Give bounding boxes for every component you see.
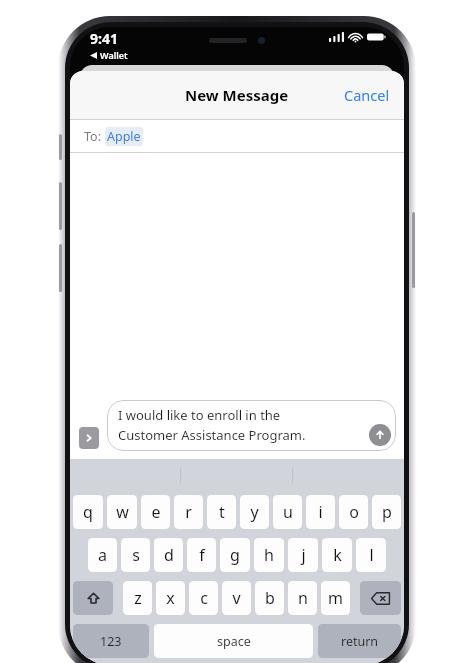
staticText: h — [264, 544, 274, 566]
button[interactable]: q — [73, 495, 103, 529]
staticText: k — [333, 544, 342, 566]
button[interactable]: Shift — [73, 581, 113, 615]
staticText: e — [151, 501, 161, 523]
button[interactable]: w — [107, 495, 137, 529]
button[interactable]: u — [273, 495, 302, 529]
staticText: v — [232, 587, 241, 609]
staticText: n — [298, 587, 308, 609]
staticText: y — [250, 501, 259, 523]
button[interactable]: 123 — [73, 624, 149, 658]
button[interactable]: m — [321, 581, 350, 615]
staticText: g — [230, 544, 240, 566]
button[interactable]: d — [154, 538, 183, 572]
staticText: x — [166, 587, 175, 609]
staticText: d — [164, 544, 174, 566]
button[interactable]: space — [154, 624, 313, 658]
staticText: To: — [84, 128, 101, 145]
staticText: t — [219, 501, 225, 523]
button[interactable]: I would like to enroll in the — [107, 400, 396, 451]
staticText: I would like to enroll in the — [118, 406, 281, 424]
button[interactable]: z — [123, 581, 152, 615]
button[interactable]: Send — [369, 424, 391, 446]
button[interactable]: l — [356, 538, 386, 572]
staticText: return — [341, 633, 379, 650]
button[interactable]: v — [222, 581, 251, 615]
button[interactable]: x — [156, 581, 185, 615]
button[interactable]: k — [322, 538, 352, 572]
button[interactable]: i — [306, 495, 335, 529]
staticText: New Message — [185, 85, 289, 105]
button[interactable]: return — [318, 624, 401, 658]
button[interactable]: y — [240, 495, 269, 529]
button[interactable]: To: — [70, 120, 404, 152]
staticText: 9:41 — [90, 29, 118, 48]
staticText: c — [200, 587, 208, 609]
staticText: l — [369, 544, 374, 566]
staticText: Wallet — [100, 49, 128, 61]
button[interactable]: g — [220, 538, 250, 572]
staticText: b — [265, 587, 275, 609]
staticText: u — [283, 501, 293, 523]
staticText: space — [217, 633, 251, 650]
button[interactable]: r — [174, 495, 203, 529]
staticText: j — [301, 544, 306, 566]
button[interactable]: Backspace — [360, 581, 401, 615]
staticText: Apple — [107, 128, 141, 145]
staticText: z — [134, 587, 142, 609]
button[interactable]: j — [288, 538, 318, 572]
staticText: m — [328, 587, 343, 609]
staticText: s — [132, 544, 140, 566]
button[interactable]: n — [288, 581, 317, 615]
button[interactable]: e — [141, 495, 170, 529]
staticText: Customer Assistance Program. — [118, 426, 306, 444]
staticText: a — [98, 544, 107, 566]
button[interactable]: h — [254, 538, 284, 572]
button[interactable]: a — [88, 538, 117, 572]
button[interactable]: p — [372, 495, 401, 529]
button[interactable]: s — [121, 538, 150, 572]
button[interactable]: b — [255, 581, 284, 615]
staticText: r — [185, 501, 192, 523]
button[interactable]: Cancel — [336, 79, 398, 111]
staticText: 123 — [100, 633, 122, 650]
button[interactable]: f — [187, 538, 216, 572]
button[interactable]: t — [207, 495, 236, 529]
button[interactable]: App drawer — [79, 427, 99, 449]
staticText: i — [318, 501, 323, 523]
staticText: p — [382, 501, 392, 523]
button[interactable]: c — [189, 581, 218, 615]
button[interactable]: Wallet — [90, 49, 128, 61]
staticText: o — [349, 501, 359, 523]
staticText: q — [83, 501, 93, 523]
staticText: Cancel — [344, 85, 390, 105]
staticText: w — [116, 501, 129, 523]
button[interactable]: o — [339, 495, 368, 529]
staticText: f — [199, 544, 205, 566]
